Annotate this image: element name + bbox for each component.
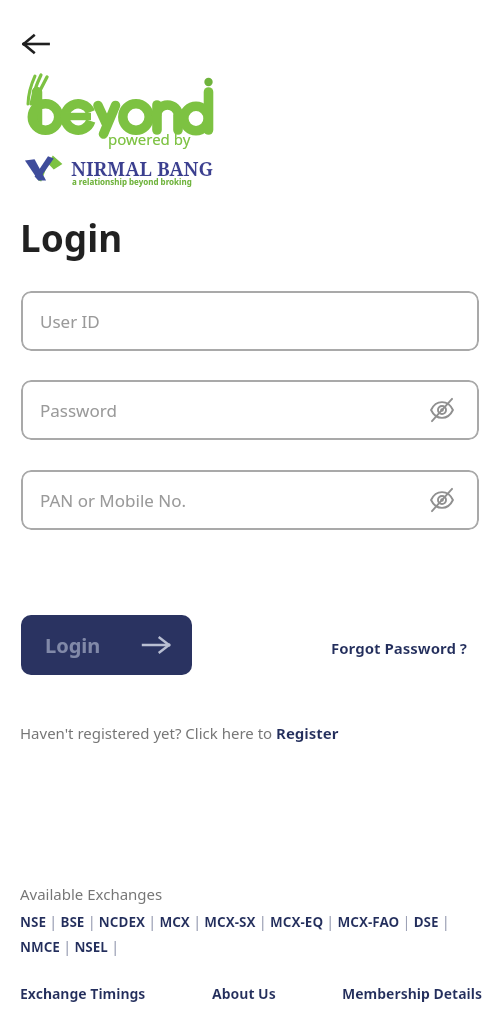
button[interactable]: Toggle password visibility	[427, 485, 457, 515]
staticText: Exchange Timings	[20, 984, 146, 1003]
staticText: About Us	[212, 984, 276, 1003]
staticText: PAN or Mobile No.	[40, 489, 187, 512]
staticText: Password	[40, 399, 117, 422]
button[interactable]: About Us	[210, 980, 278, 1007]
staticText: Available Exchanges	[20, 884, 163, 904]
staticText: Login	[45, 632, 101, 659]
button[interactable]: PAN or Mobile No.	[21, 470, 479, 530]
button[interactable]: Toggle password visibility	[427, 395, 457, 425]
staticText: Forgot Password ?	[331, 638, 467, 658]
button[interactable]: Password	[21, 380, 479, 440]
staticText: powered by	[108, 129, 191, 149]
button[interactable]: Membership Details	[340, 980, 484, 1007]
button[interactable]: User ID	[21, 291, 479, 351]
button[interactable]: Forgot Password ?	[325, 633, 473, 663]
staticText: Membership Details	[342, 984, 482, 1003]
button[interactable]: Login	[21, 615, 192, 675]
button[interactable]: Exchange Timings	[18, 980, 148, 1007]
staticText: a relationship beyond broking	[72, 176, 192, 187]
staticText: Login	[20, 212, 123, 262]
staticText: NSE | BSE | NCDEX | MCX | MCX-SX | MCX-E…	[20, 913, 482, 956]
button[interactable]: Haven't registered yet? Click here to Re…	[20, 723, 339, 743]
staticText: User ID	[40, 310, 100, 333]
staticText: NIRMAL BANG	[71, 156, 214, 182]
button[interactable]: Back	[12, 20, 60, 68]
staticText: Haven't registered yet? Click here to Re…	[20, 723, 339, 743]
